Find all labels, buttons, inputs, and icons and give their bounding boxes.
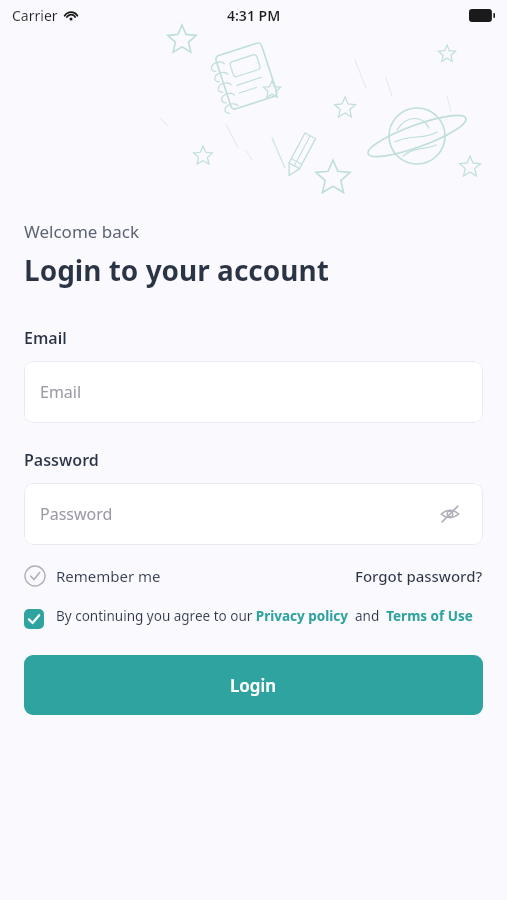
button[interactable]: Show password [437, 501, 463, 527]
button[interactable]: By continuing you agree to our Privacy p… [56, 607, 473, 625]
button[interactable]: Login [24, 655, 483, 715]
button[interactable]: Accept terms checkbox [24, 609, 44, 629]
staticText: Email [40, 381, 82, 403]
staticText: Login to your account [24, 251, 329, 289]
staticText: 4:31 PM [227, 6, 281, 25]
staticText: Login [230, 674, 277, 697]
button[interactable]: Forgot password? [355, 562, 483, 590]
staticText: Remember me [56, 566, 161, 586]
button[interactable]: Email [24, 361, 483, 423]
staticText: Forgot password? [355, 566, 483, 586]
staticText: Password [40, 503, 113, 525]
button[interactable]: Password [24, 483, 483, 545]
staticText: Carrier [12, 6, 58, 25]
staticText: Welcome back [24, 220, 140, 243]
button[interactable]: Remember me [24, 561, 161, 591]
staticText: Email [24, 327, 67, 349]
staticText: Password [24, 449, 99, 471]
